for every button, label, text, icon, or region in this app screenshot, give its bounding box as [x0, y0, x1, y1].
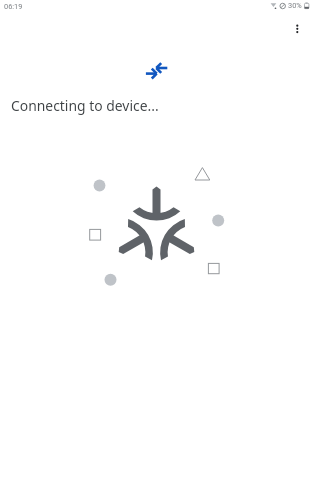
button[interactable]: More options — [284, 14, 312, 42]
staticText: Connecting to device... — [11, 96, 159, 115]
staticText: 30% — [288, 1, 302, 10]
staticText: 06:19 — [4, 2, 23, 11]
